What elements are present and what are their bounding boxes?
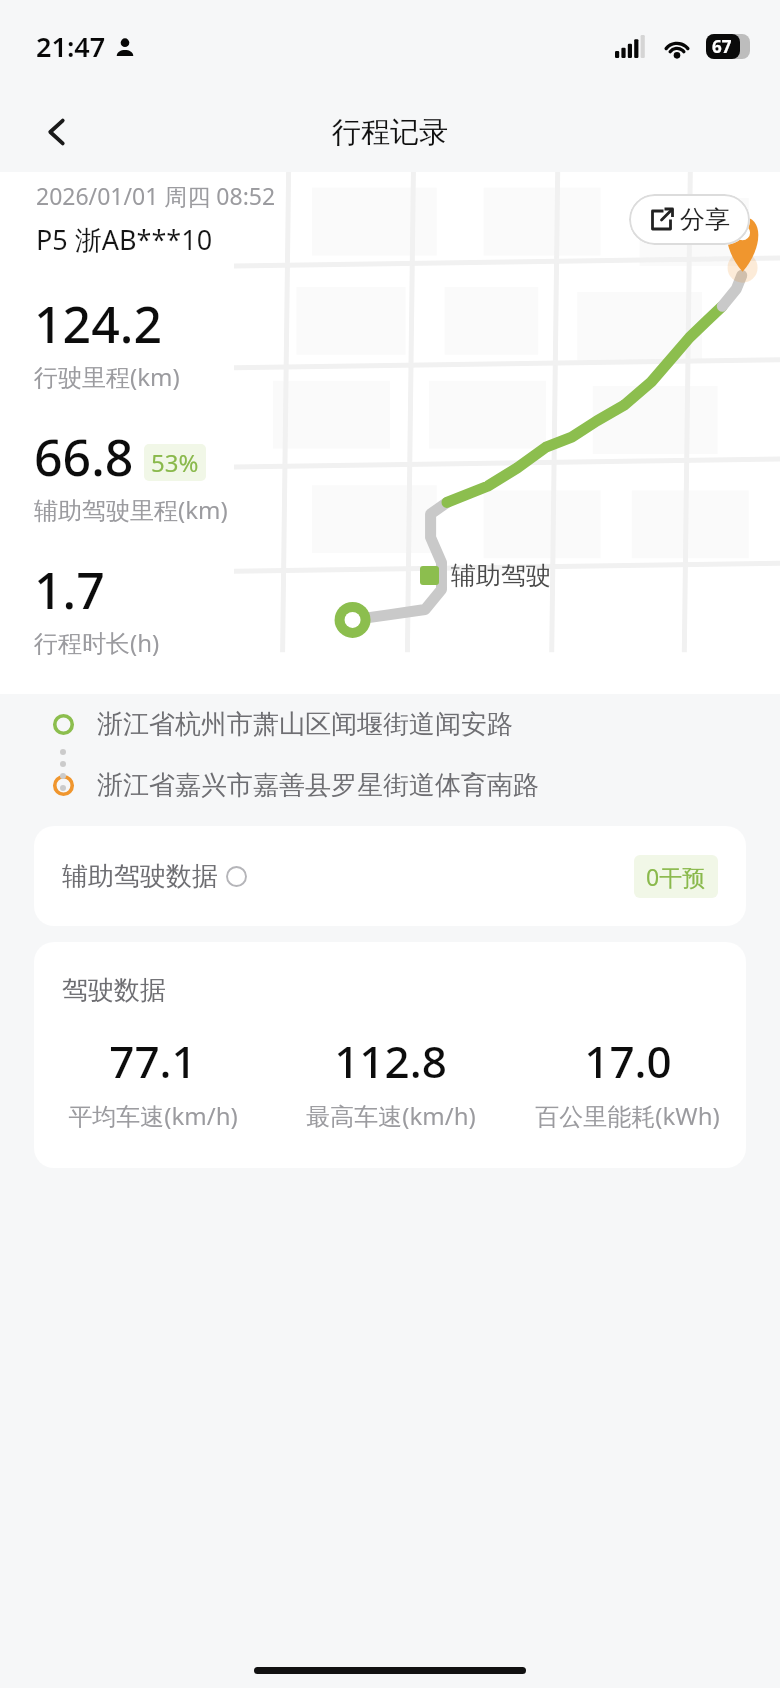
staticText: 0干预: [646, 861, 706, 892]
staticText: 112.8: [334, 1031, 447, 1091]
staticText: 百公里能耗(kWh): [535, 1099, 720, 1132]
staticText: 1.7: [34, 556, 105, 624]
staticText: 辅助驾驶: [451, 560, 551, 591]
staticText: 53%: [151, 446, 199, 479]
button[interactable]: 辅助驾驶数据: [34, 826, 746, 926]
staticText: 分享: [680, 204, 730, 235]
staticText: 77.1: [109, 1031, 197, 1091]
staticText: 行驶里程(km): [34, 360, 180, 393]
staticText: P5 浙AB***10: [36, 221, 213, 258]
staticText: 浙江省杭州市萧山区闻堰街道闻安路: [97, 708, 513, 741]
staticText: 21:47: [36, 28, 106, 65]
staticText: 124.2: [34, 290, 162, 358]
staticText: 平均车速(km/h): [68, 1099, 238, 1132]
staticText: 行程时长(h): [34, 626, 160, 659]
button[interactable]: Back: [32, 107, 82, 157]
staticText: 浙江省嘉兴市嘉善县罗星街道体育南路: [97, 769, 539, 802]
staticText: 17.0: [584, 1031, 672, 1091]
button[interactable]: 分享: [629, 194, 750, 245]
staticText: 66.8: [34, 423, 134, 491]
staticText: 2026/01/01 周四 08:52: [36, 180, 276, 211]
staticText: 67: [712, 35, 732, 58]
staticText: 行程记录: [332, 114, 448, 151]
staticText: 最高车速(km/h): [306, 1099, 476, 1132]
staticText: 辅助驾驶里程(km): [34, 493, 228, 526]
staticText: 辅助驾驶数据: [62, 860, 218, 893]
staticText: 驾驶数据: [62, 974, 166, 1007]
